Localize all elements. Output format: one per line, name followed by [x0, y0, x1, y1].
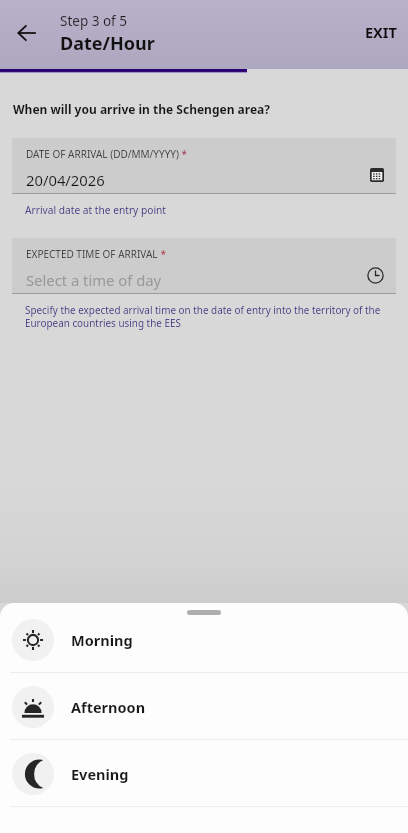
staticText: Date/Hour: [60, 31, 155, 56]
button[interactable]: DATE OF ARRIVAL (DD/MM/YYYY): [12, 138, 396, 194]
staticText: When will you arrive in the Schengen are…: [13, 101, 270, 117]
button[interactable]: EXPECTED TIME OF ARRIVAL: [12, 238, 396, 294]
staticText: EXPECTED TIME OF ARRIVAL: [26, 247, 158, 261]
staticText: Step 3 of 5: [60, 12, 127, 30]
staticText: Select a time of day: [26, 270, 162, 290]
button[interactable]: Afternoon: [0, 673, 408, 739]
staticText: Afternoon: [71, 697, 146, 717]
button[interactable]: Evening: [0, 740, 408, 806]
button[interactable]: EXIT: [354, 14, 408, 50]
staticText: Morning: [71, 630, 133, 650]
button[interactable]: Morning: [0, 606, 408, 672]
staticText: Arrival date at the entry point: [25, 203, 166, 217]
staticText: *: [179, 147, 188, 161]
staticText: *: [158, 247, 167, 261]
staticText: DATE OF ARRIVAL (DD/MM/YYYY): [26, 147, 179, 161]
staticText: 20/04/2026: [26, 170, 105, 190]
staticText: Evening: [71, 764, 129, 784]
button[interactable]: Back: [9, 15, 44, 50]
staticText: EXIT: [365, 22, 397, 42]
staticText: Specify the expected arrival time on the…: [25, 303, 388, 329]
